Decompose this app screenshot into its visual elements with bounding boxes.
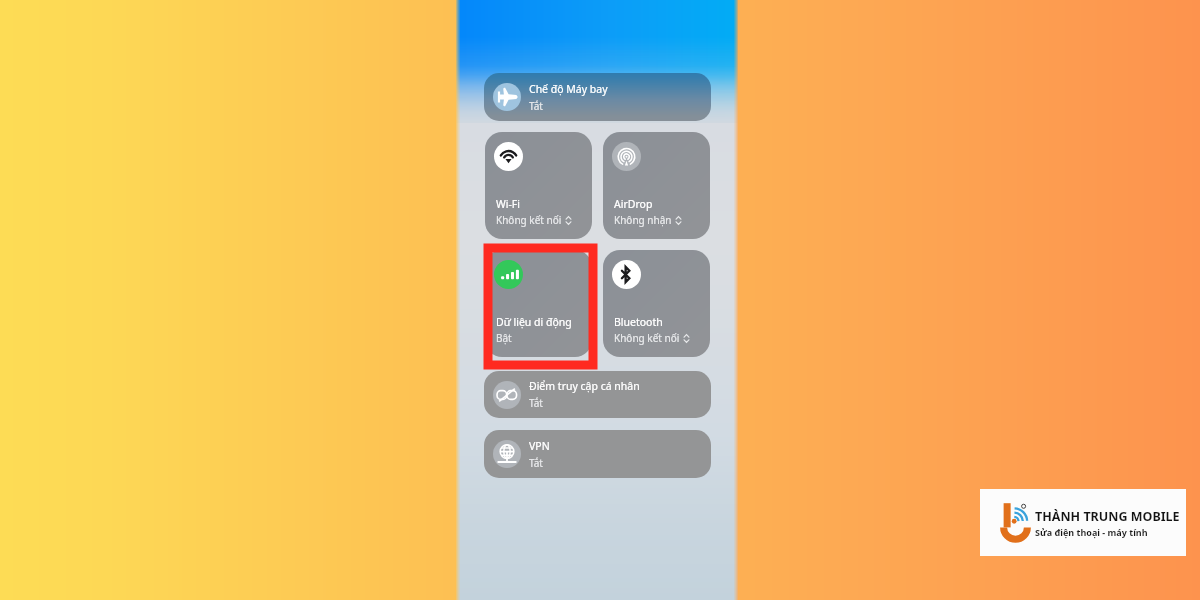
button[interactable]: Bluetooth, Không kết nối	[603, 250, 710, 357]
staticText: Dữ liệu di động	[496, 315, 572, 329]
staticText: Không kết nối	[496, 213, 562, 227]
button[interactable]: Dữ liệu di động, Bật	[485, 250, 592, 357]
staticText: Chế độ Máy bay	[529, 82, 608, 96]
staticText: Bật	[496, 331, 512, 345]
button[interactable]: VPN, Tắt	[484, 430, 711, 478]
staticText: Tắt	[529, 456, 543, 470]
staticText: THÀNH TRUNG MOBILE	[1035, 508, 1180, 525]
staticText: Wi-Fi	[496, 197, 521, 211]
button[interactable]: Wi-Fi, Không kết nối	[485, 132, 592, 239]
staticText: Tắt	[529, 396, 543, 410]
staticText: Tắt	[529, 99, 543, 113]
button[interactable]: Chế độ Máy bay, Tắt	[484, 73, 711, 121]
button[interactable]: AirDrop, Không nhận	[603, 132, 710, 239]
staticText: Bluetooth	[614, 315, 663, 329]
staticText: Sửa điện thoại - máy tính	[1035, 526, 1148, 538]
staticText: Không nhận	[614, 213, 672, 227]
button[interactable]: Điểm truy cập cá nhân, Tắt	[484, 371, 711, 418]
staticText: VPN	[529, 439, 550, 453]
staticText: Không kết nối	[614, 331, 680, 345]
staticText: Điểm truy cập cá nhân	[529, 379, 640, 393]
staticText: AirDrop	[614, 197, 653, 211]
